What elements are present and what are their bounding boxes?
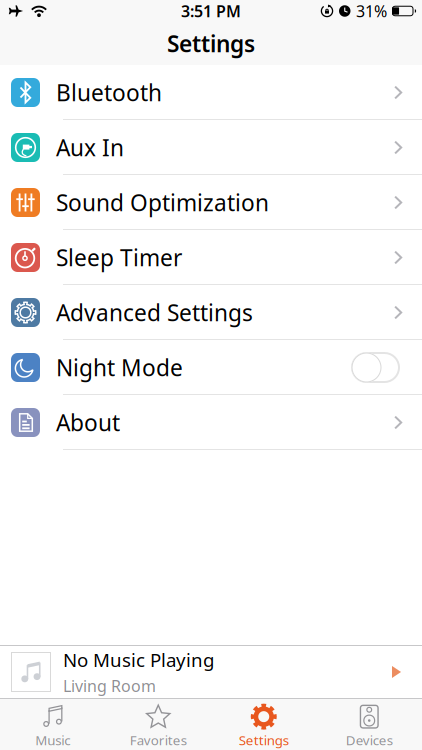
- staticText: Settings: [167, 28, 255, 58]
- button[interactable]: No Music Playing: [0, 645, 422, 698]
- button[interactable]: Sound Optimization: [0, 175, 422, 230]
- staticText: Bluetooth: [56, 77, 162, 107]
- staticText: Settings: [239, 731, 289, 749]
- staticText: Advanced Settings: [56, 297, 253, 327]
- staticText: 31%: [356, 0, 387, 22]
- button[interactable]: Devices: [316, 698, 422, 750]
- staticText: 3:51 PM: [181, 0, 241, 22]
- staticText: Sound Optimization: [56, 187, 269, 217]
- button[interactable]: Advanced Settings: [0, 285, 422, 340]
- button[interactable]: Music: [0, 698, 105, 750]
- button[interactable]: Bluetooth: [0, 65, 422, 120]
- staticText: About: [56, 407, 120, 437]
- button[interactable]: Settings: [211, 698, 316, 750]
- staticText: Devices: [346, 731, 393, 749]
- staticText: Sleep Timer: [56, 242, 182, 272]
- staticText: Music: [35, 731, 70, 749]
- button[interactable]: Night Mode: [0, 340, 422, 395]
- staticText: Favorites: [130, 731, 187, 749]
- button[interactable]: Sleep Timer: [0, 230, 422, 285]
- staticText: Living Room: [63, 675, 156, 696]
- button[interactable]: Aux In: [0, 120, 422, 175]
- staticText: No Music Playing: [63, 647, 214, 672]
- button[interactable]: About: [0, 395, 422, 450]
- staticText: Night Mode: [56, 352, 183, 382]
- button[interactable]: Favorites: [105, 698, 211, 750]
- staticText: Aux In: [56, 132, 124, 162]
